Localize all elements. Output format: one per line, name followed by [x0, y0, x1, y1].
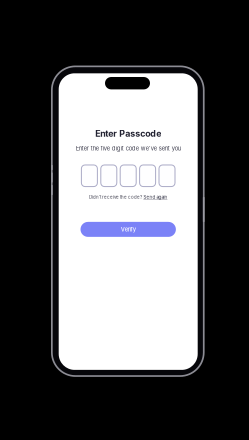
button[interactable]: Passcode digit: [81, 165, 97, 187]
button[interactable]: Passcode digit: [140, 165, 156, 187]
staticText: Didn't receive the code?: [89, 195, 142, 200]
button[interactable]: Passcode digit: [159, 165, 175, 187]
staticText: Verify: [121, 226, 136, 233]
staticText: Send again: [143, 195, 167, 200]
button[interactable]: Passcode digit: [101, 165, 117, 187]
staticText: Enter the five digit code we've sent you: [76, 145, 181, 152]
button[interactable]: Send again: [143, 195, 167, 200]
staticText: Enter Passcode: [95, 128, 161, 139]
button[interactable]: Passcode digit: [120, 165, 136, 187]
button[interactable]: Verify: [80, 222, 176, 237]
